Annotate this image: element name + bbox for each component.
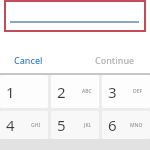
- staticText: Continue: [95, 54, 135, 66]
- staticText: 3: [108, 82, 117, 102]
- staticText: ABC: [82, 88, 92, 95]
- staticText: Cancel: [14, 54, 43, 66]
- staticText: 5: [57, 115, 66, 135]
- staticText: 2: [57, 82, 66, 102]
- button[interactable]: 1: [0, 75, 48, 108]
- staticText: JKL: [84, 122, 92, 129]
- staticText: GHI: [31, 122, 41, 129]
- staticText: 1: [6, 82, 15, 102]
- staticText: DEF: [133, 88, 143, 95]
- button[interactable]: 2: [51, 75, 99, 108]
- button[interactable]: 3: [102, 75, 150, 108]
- button[interactable]: 4: [0, 111, 48, 139]
- button[interactable]: Continue: [93, 49, 137, 70]
- staticText: 4: [6, 115, 15, 135]
- staticText: 6: [108, 115, 117, 135]
- button[interactable]: 5: [51, 111, 99, 139]
- button[interactable]: Cancel: [8, 49, 48, 70]
- staticText: MNO: [130, 122, 143, 129]
- button[interactable]: 6: [102, 111, 150, 139]
